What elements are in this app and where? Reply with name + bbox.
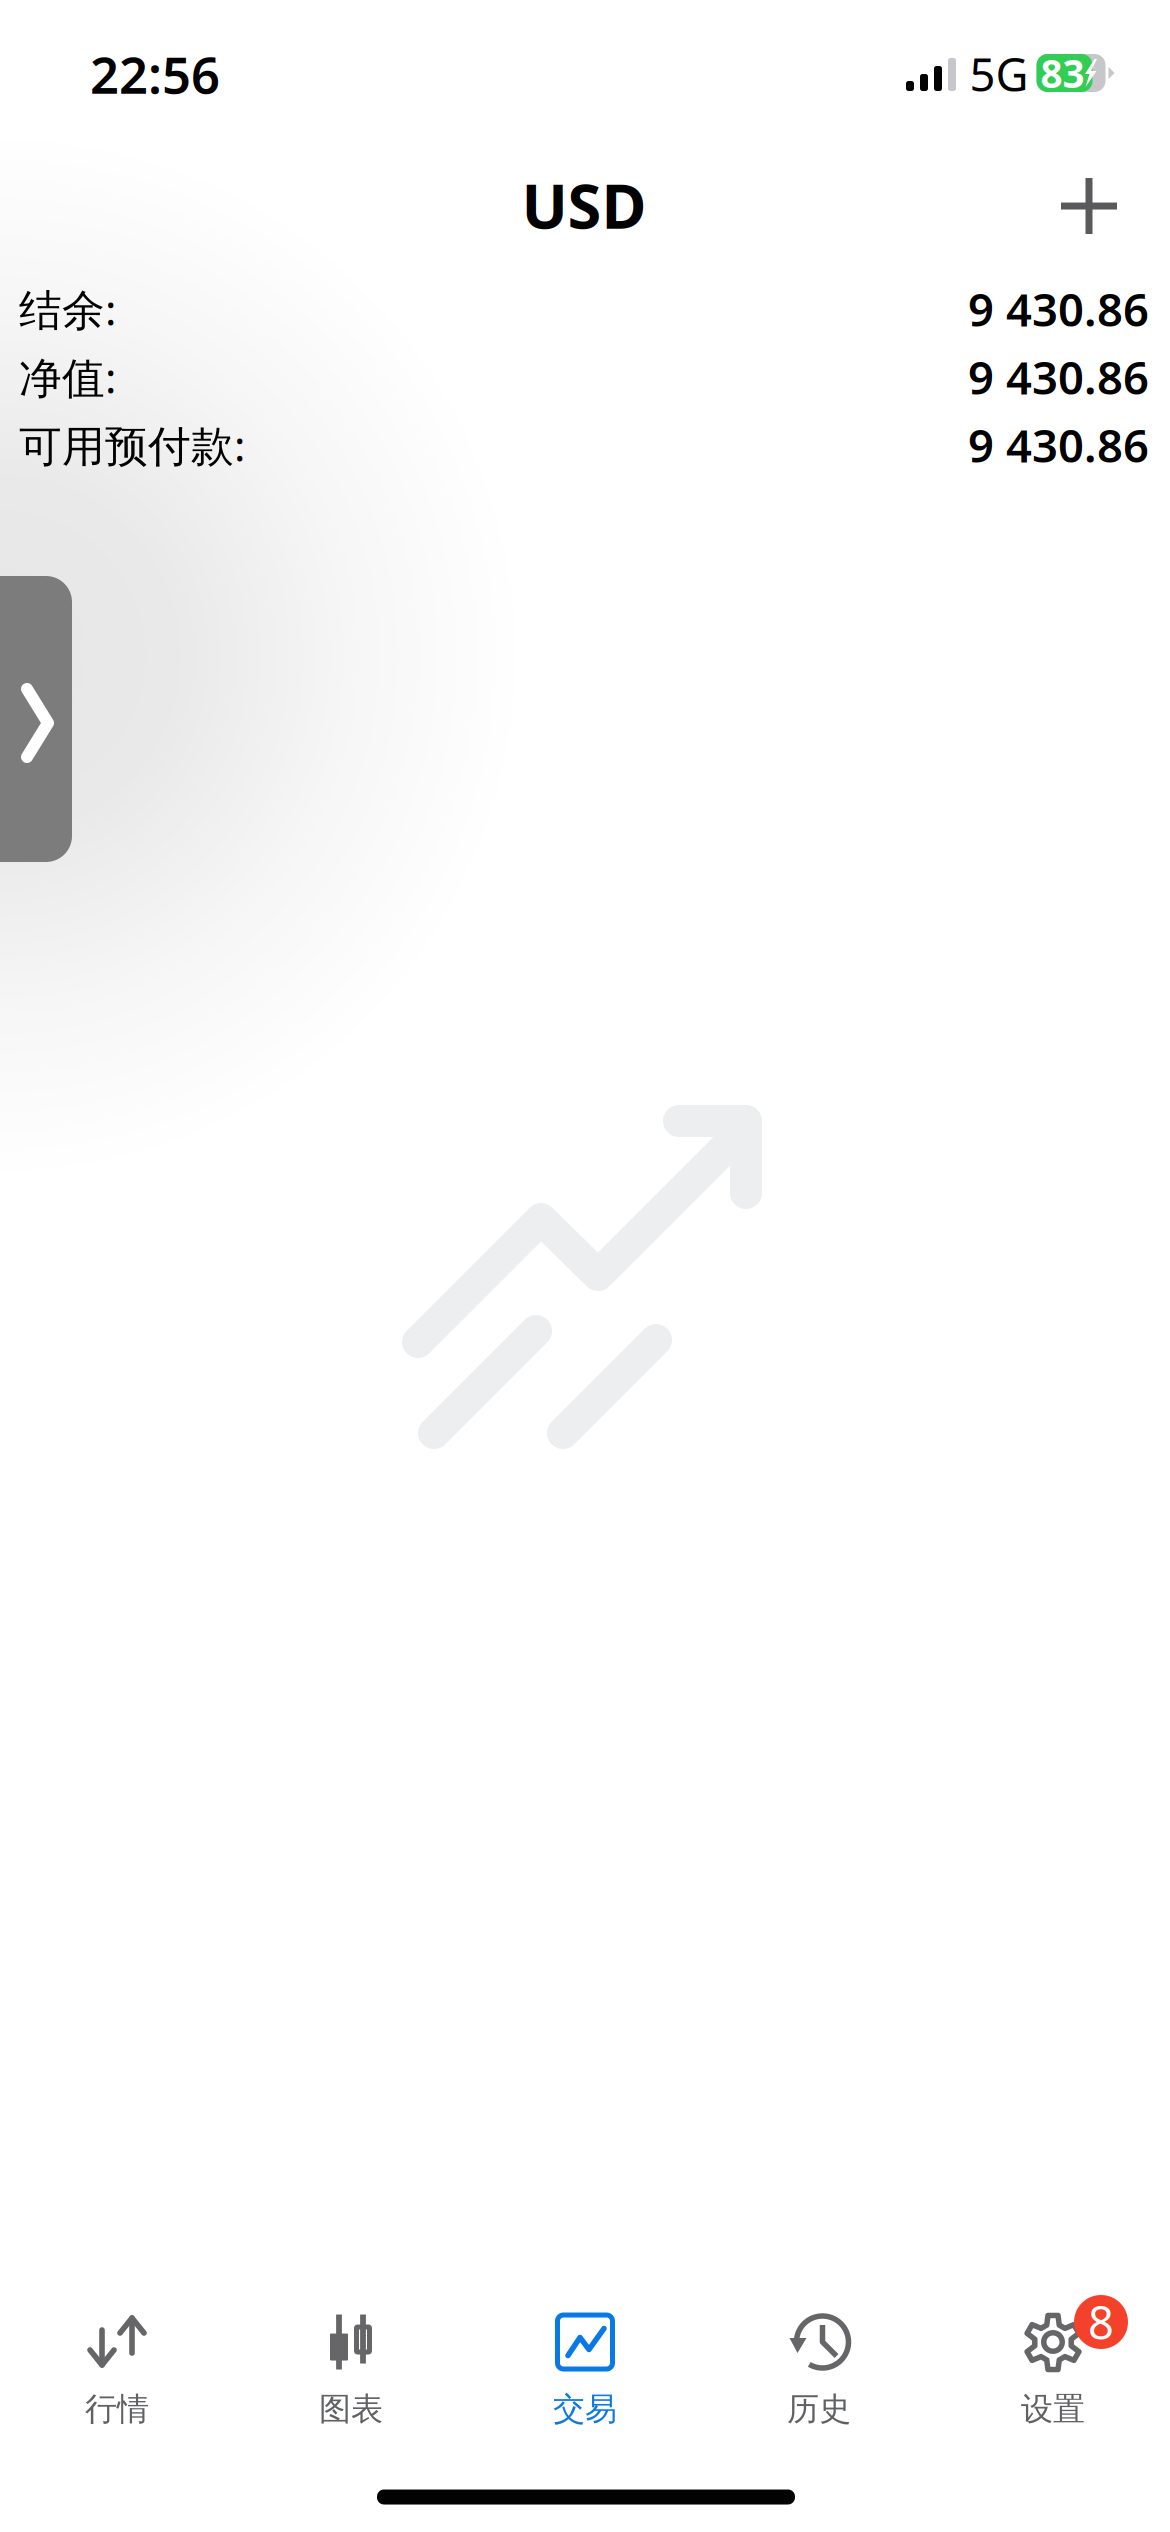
staticText: 83 [1040, 47, 1084, 99]
staticText: 净值: [19, 349, 116, 405]
button[interactable]: New order [1037, 154, 1141, 258]
staticText: 设置 [1021, 2389, 1085, 2429]
staticText: 22:56 [90, 40, 220, 108]
button[interactable]: 8 [936, 2292, 1170, 2452]
button[interactable]: 图表 [234, 2292, 468, 2452]
staticText: 9 430.86 [968, 347, 1149, 407]
staticText: 行情 [85, 2389, 149, 2429]
staticText: 交易 [553, 2389, 617, 2429]
button[interactable]: 行情 [0, 2292, 234, 2452]
staticText: USD [521, 164, 646, 246]
button[interactable]: Show quotes [0, 576, 72, 862]
button[interactable]: 历史 [702, 2292, 936, 2452]
staticText: 9 430.86 [968, 415, 1149, 475]
staticText: 可用预付款: [19, 417, 245, 473]
staticText: 9 430.86 [968, 279, 1149, 339]
staticText: 8 [1088, 2292, 1114, 2352]
staticText: 5G [969, 44, 1028, 104]
button[interactable]: 交易 [468, 2292, 702, 2452]
staticText: 历史 [787, 2389, 851, 2429]
staticText: 图表 [319, 2389, 383, 2429]
staticText: 结余: [19, 281, 116, 337]
